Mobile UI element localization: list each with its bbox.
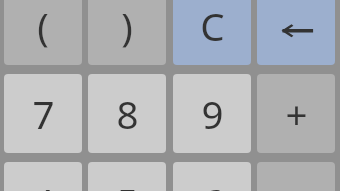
button[interactable]: C [173,0,251,65]
button[interactable]: 8 [88,74,166,153]
button[interactable]: 7 [4,74,82,153]
button[interactable]: ( [4,0,82,65]
staticText: ( [37,0,49,52]
staticText: ) [121,0,133,52]
button[interactable]: 6 [173,162,251,191]
button[interactable]: + [257,74,335,153]
button[interactable]: ) [88,0,166,65]
staticText: C [200,0,225,52]
staticText: 8 [116,88,139,140]
staticText: 6 [201,176,224,191]
staticText: 4 [32,176,55,191]
staticText: 5 [116,176,139,191]
button[interactable]: 9 [173,74,251,153]
button[interactable]: Backspace [257,0,335,65]
staticText: + [285,88,308,140]
staticText: 7 [32,88,55,140]
button[interactable]: 4 [4,162,82,191]
staticText: 9 [201,88,224,140]
button[interactable]: 5 [88,162,166,191]
